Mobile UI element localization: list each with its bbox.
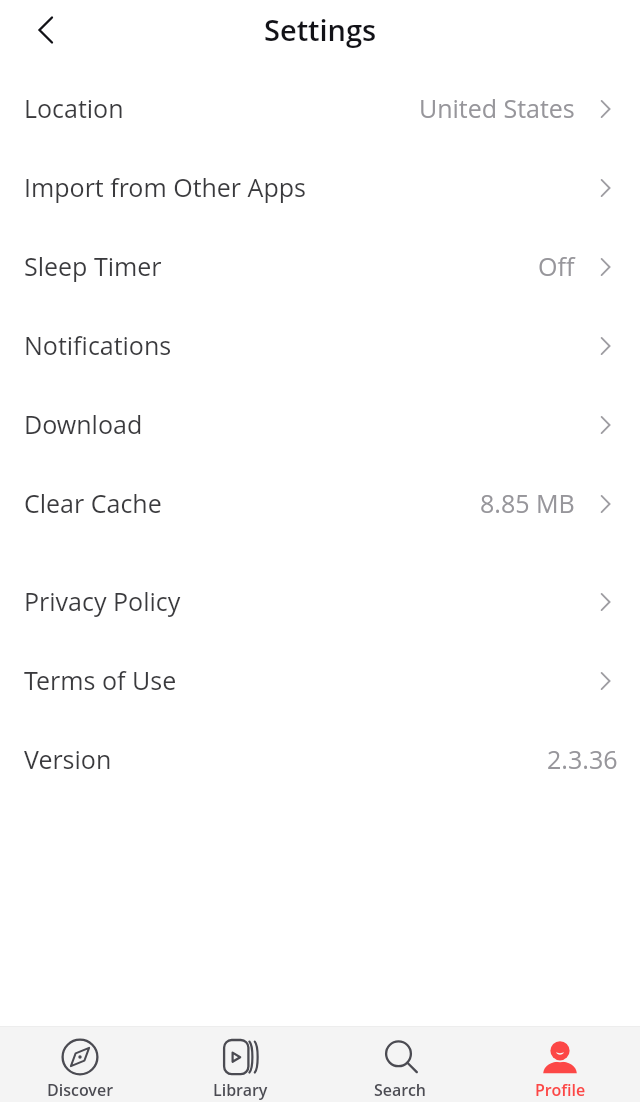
staticText: Profile (535, 1079, 586, 1101)
staticText: Terms of Use (24, 663, 177, 697)
button[interactable]: Discover (0, 1027, 160, 1102)
button[interactable]: Import from Other Apps (0, 147, 640, 226)
staticText: Library (213, 1079, 268, 1101)
staticText: Settings (264, 10, 377, 49)
staticText: Sleep Timer (24, 249, 162, 283)
staticText: 8.85 MB (480, 486, 575, 520)
button[interactable]: Library (160, 1027, 320, 1102)
staticText: Privacy Policy (24, 584, 181, 618)
button[interactable]: Terms of Use (0, 640, 640, 719)
button[interactable]: Notifications (0, 305, 640, 384)
button[interactable]: Location (0, 68, 640, 147)
staticText: Search (374, 1079, 426, 1101)
button[interactable]: Profile (480, 1027, 640, 1102)
staticText: Clear Cache (24, 486, 162, 520)
button[interactable]: Download (0, 384, 640, 463)
button[interactable]: Clear Cache (0, 463, 640, 542)
staticText: Location (24, 91, 124, 125)
staticText: 2.3.36 (547, 742, 618, 776)
staticText: United States (419, 91, 575, 125)
staticText: Version (24, 742, 112, 776)
button[interactable]: Privacy Policy (0, 561, 640, 640)
staticText: Notifications (24, 328, 172, 362)
staticText: Off (538, 249, 575, 283)
button[interactable]: Sleep Timer (0, 226, 640, 305)
button[interactable]: Back (27, 4, 79, 56)
staticText: Download (24, 407, 143, 441)
button[interactable]: Search (320, 1027, 480, 1102)
staticText: Discover (47, 1079, 114, 1101)
staticText: Import from Other Apps (24, 170, 306, 204)
button[interactable]: Version (0, 719, 640, 798)
